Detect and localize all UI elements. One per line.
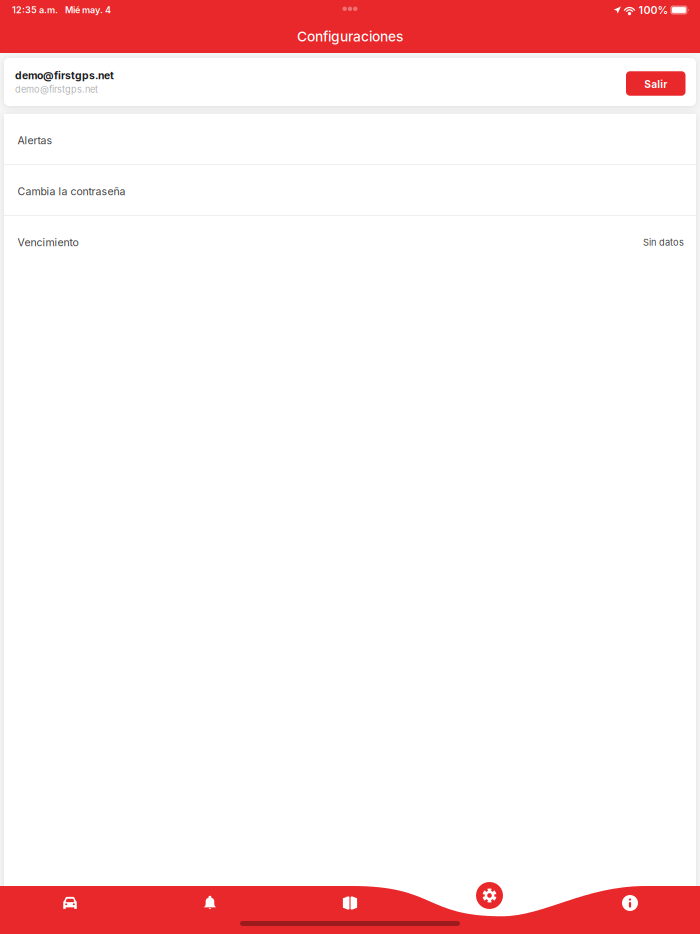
button[interactable]: Alertas xyxy=(4,114,696,164)
button[interactable]: Vencimiento xyxy=(4,216,696,266)
staticText: Salir xyxy=(644,78,667,90)
staticText: demo@firstgps.net xyxy=(15,84,98,95)
button[interactable]: Vehículos xyxy=(0,886,140,920)
button[interactable]: Cambia la contraseña xyxy=(4,165,696,215)
staticText: demo@firstgps.net xyxy=(15,69,114,82)
staticText: 100% xyxy=(638,3,668,16)
button[interactable]: Salir xyxy=(626,70,685,94)
staticText: Configuraciones xyxy=(297,28,403,45)
button[interactable]: Información xyxy=(560,886,700,920)
button[interactable]: Mapa xyxy=(280,886,420,920)
button[interactable]: Configuraciones xyxy=(476,882,503,909)
staticText: Sin datos xyxy=(643,237,684,248)
staticText: 12:35 a.m. xyxy=(12,4,58,15)
staticText: Vencimiento xyxy=(17,236,78,249)
staticText: Mié may. 4 xyxy=(65,4,111,15)
button[interactable]: Alertas xyxy=(140,886,280,920)
staticText: Cambia la contraseña xyxy=(17,185,125,198)
staticText: Alertas xyxy=(17,134,52,147)
